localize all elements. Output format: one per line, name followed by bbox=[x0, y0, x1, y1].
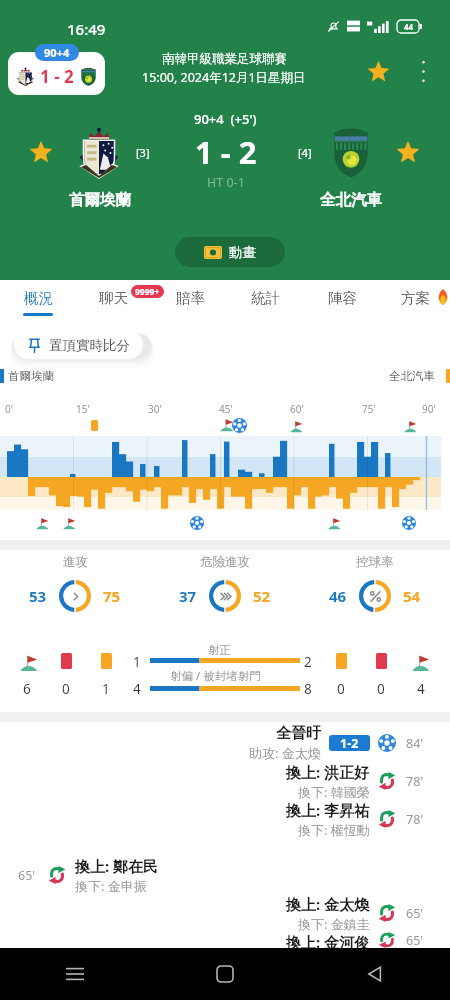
button[interactable]: Back bbox=[300, 948, 450, 1000]
button[interactable]: 概況 bbox=[4, 280, 72, 322]
staticText: 65' bbox=[406, 932, 424, 948]
staticText: 0' bbox=[5, 402, 13, 416]
staticText: 90+4 bbox=[44, 45, 70, 60]
button[interactable]: 換上: 金太煥 bbox=[0, 894, 450, 932]
button[interactable]: 全晉旴 bbox=[0, 724, 450, 762]
button[interactable]: Favourite bbox=[360, 53, 397, 90]
staticText: HT 0-1 bbox=[207, 174, 245, 191]
staticText: 換下: 金鎮圭 bbox=[298, 915, 370, 932]
staticText: 0 bbox=[337, 680, 345, 698]
button[interactable]: 65' bbox=[0, 856, 450, 894]
staticText: 全北汽車 bbox=[389, 369, 435, 383]
staticText: 53 bbox=[29, 586, 47, 606]
staticText: 動畫 bbox=[229, 244, 256, 261]
staticText: 60' bbox=[290, 402, 304, 416]
staticText: 90+4 (+5') bbox=[194, 110, 257, 128]
staticText: 16:49 bbox=[67, 19, 106, 39]
staticText: 90' bbox=[422, 402, 436, 416]
button[interactable]: 統計 bbox=[231, 280, 299, 322]
staticText: 15:00, 2024年12月1日星期日 bbox=[142, 69, 306, 86]
staticText: 換上: 金太煥 bbox=[286, 894, 370, 914]
button[interactable]: 換上: 李昇祐 bbox=[0, 800, 450, 838]
staticText: 控球率 bbox=[356, 554, 394, 570]
staticText: 換上: 洪正好 bbox=[286, 762, 370, 782]
button[interactable]: 換上: 洪正好 bbox=[0, 762, 450, 800]
staticText: 6 bbox=[23, 680, 31, 698]
staticText: 1 - 2 bbox=[195, 131, 257, 173]
staticText: 65' bbox=[18, 867, 36, 884]
button[interactable]: 聊天 bbox=[79, 280, 147, 322]
staticText: 37 bbox=[179, 586, 197, 606]
staticText: 75' bbox=[362, 402, 376, 416]
button[interactable]: Home bbox=[150, 948, 300, 1000]
staticText: 78' bbox=[406, 773, 424, 790]
button[interactable]: 方案 bbox=[381, 280, 449, 322]
staticText: 換上: 李昇祐 bbox=[286, 800, 370, 820]
staticText: 全北汽車 bbox=[320, 190, 382, 210]
staticText: 射偏 / 被封堵射門 bbox=[170, 668, 261, 684]
staticText: 聊天 bbox=[99, 289, 128, 307]
button[interactable]: 換上: 金河俊 bbox=[0, 932, 450, 948]
staticText: 概況 bbox=[24, 289, 53, 307]
staticText: 2 bbox=[304, 653, 312, 671]
staticText: 1-2 bbox=[340, 735, 359, 751]
staticText: 方案 bbox=[401, 289, 430, 307]
staticText: 44 bbox=[404, 21, 414, 32]
staticText: 65' bbox=[406, 905, 424, 922]
staticText: 4 bbox=[417, 680, 425, 698]
staticText: 危險進攻 bbox=[200, 554, 250, 570]
staticText: 助攻: 金太煥 bbox=[249, 744, 321, 762]
staticText: 1 bbox=[102, 680, 110, 698]
staticText: 84' bbox=[406, 735, 424, 752]
staticText: 賠率 bbox=[176, 289, 205, 307]
staticText: 9999+ bbox=[135, 286, 160, 298]
staticText: 52 bbox=[253, 586, 271, 606]
staticText: 15' bbox=[76, 402, 90, 416]
staticText: 1 bbox=[133, 653, 141, 671]
staticText: 54 bbox=[403, 586, 421, 606]
staticText: 進攻 bbox=[63, 554, 88, 570]
staticText: 換上: 金河俊 bbox=[286, 932, 370, 948]
button[interactable]: 賠率 bbox=[156, 280, 224, 322]
staticText: 換下: 權恆勳 bbox=[298, 821, 370, 838]
button[interactable]: Recent apps bbox=[0, 948, 150, 1000]
staticText: 換下: 韓國榮 bbox=[298, 783, 370, 800]
staticText: 換上: 鄭在民 bbox=[75, 856, 159, 876]
button[interactable]: 1 - 2 bbox=[8, 52, 105, 95]
staticText: 射正 bbox=[208, 643, 231, 657]
button[interactable]: 動畫 bbox=[175, 237, 285, 267]
staticText: 首爾埃蘭 bbox=[8, 369, 54, 383]
staticText: [3] bbox=[136, 145, 150, 160]
staticText: 首爾埃蘭 bbox=[69, 190, 131, 210]
button[interactable]: More options bbox=[405, 53, 442, 90]
staticText: 南韓甲級職業足球聯賽 bbox=[162, 51, 287, 67]
staticText: 全晉旴 bbox=[276, 724, 321, 743]
staticText: 置頂實時比分 bbox=[49, 337, 130, 354]
staticText: 30' bbox=[148, 402, 162, 416]
staticText: 45' bbox=[219, 402, 233, 416]
staticText: 統計 bbox=[251, 289, 280, 307]
button[interactable]: 陣容 bbox=[308, 280, 376, 322]
staticText: 8 bbox=[304, 680, 312, 698]
staticText: 1 - 2 bbox=[40, 65, 74, 88]
staticText: 0 bbox=[377, 680, 385, 698]
staticText: 46 bbox=[329, 586, 347, 606]
staticText: 78' bbox=[406, 811, 424, 828]
staticText: 4 bbox=[133, 680, 141, 698]
button[interactable]: 置頂實時比分 bbox=[14, 331, 143, 359]
staticText: [4] bbox=[298, 145, 312, 160]
staticText: 75 bbox=[103, 586, 121, 606]
staticText: 陣容 bbox=[328, 289, 357, 307]
staticText: 換下: 金申振 bbox=[75, 877, 147, 894]
staticText: 0 bbox=[62, 680, 70, 698]
